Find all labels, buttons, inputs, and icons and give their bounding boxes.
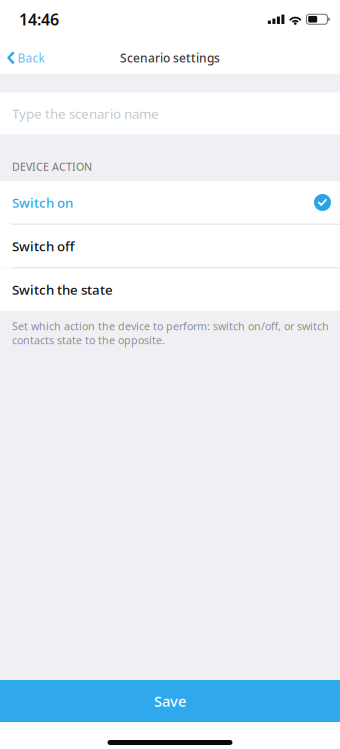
staticText: Switch on	[12, 194, 73, 211]
staticText: Switch off	[12, 237, 75, 255]
button[interactable]: Back	[0, 41, 55, 74]
button[interactable]: Switch on	[0, 181, 340, 224]
staticText: Save	[154, 691, 186, 711]
staticText: Set which action the device to perform: …	[12, 319, 329, 347]
button[interactable]: Switch the state	[0, 268, 340, 311]
staticText: Type the scenario name	[12, 105, 159, 122]
staticText: 14:46	[19, 9, 59, 30]
staticText: DEVICE ACTION	[12, 159, 92, 174]
staticText: Switch the state	[12, 281, 113, 298]
staticText: Back	[18, 50, 45, 66]
button[interactable]: Type the scenario name	[0, 92, 340, 134]
staticText: Scenario settings	[120, 50, 220, 66]
button[interactable]: Save	[0, 680, 340, 722]
button[interactable]: Switch off	[0, 225, 340, 267]
